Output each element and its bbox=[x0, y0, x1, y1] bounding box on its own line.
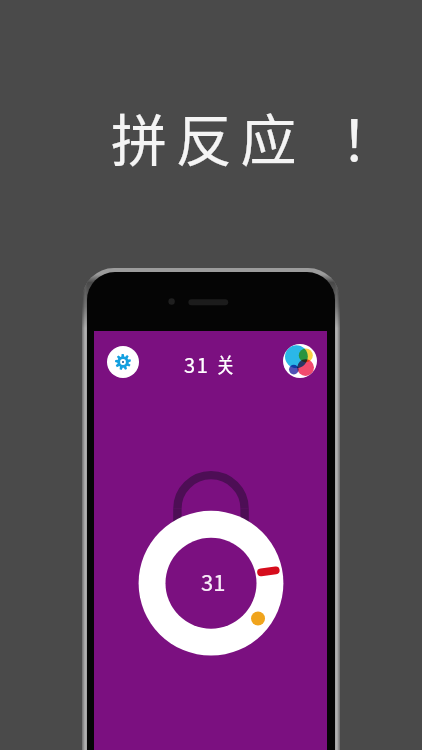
staticText: 31 关 bbox=[184, 350, 238, 379]
staticText: 拼反应 ！ bbox=[111, 96, 391, 177]
button[interactable]: Settings bbox=[107, 346, 139, 378]
button[interactable]: Themes bbox=[283, 344, 317, 378]
staticText: 31 bbox=[201, 565, 226, 597]
